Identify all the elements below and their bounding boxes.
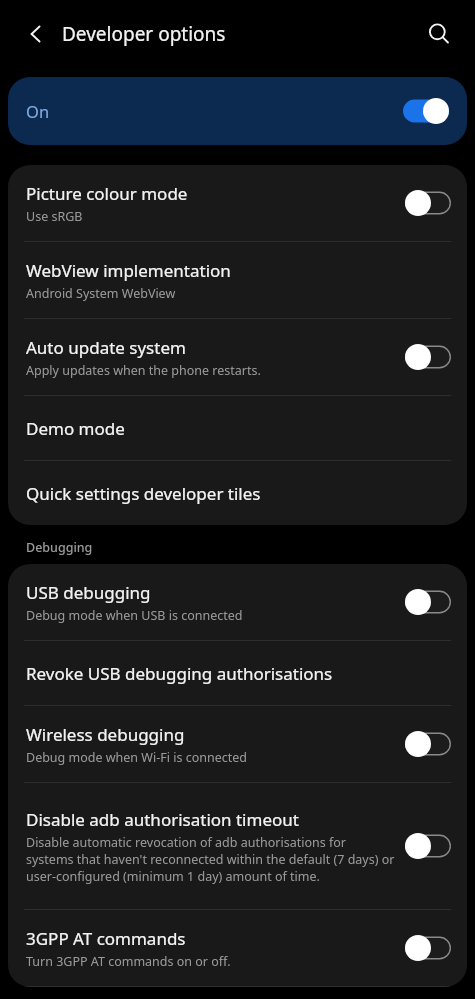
button[interactable]: Disable adb authorisation timeout [8,783,467,909]
button[interactable]: Toggle off [405,833,451,859]
staticText: Debug mode when Wi-Fi is connected [26,749,247,766]
button[interactable]: Auto update system [8,319,467,395]
staticText: On [26,100,50,122]
staticText: WebView implementation [26,259,231,282]
staticText: Android System WebView [26,285,176,302]
staticText: Revoke USB debugging authorisations [26,662,333,685]
button[interactable]: USB debugging [8,564,467,640]
button[interactable]: Quick settings developer tiles [8,461,467,525]
button[interactable]: Search [417,12,461,56]
staticText: Turn 3GPP AT commands on or off. [26,953,231,970]
staticText: Developer options [62,21,226,47]
button[interactable]: On [8,77,467,145]
staticText: 3GPP AT commands [26,927,186,950]
staticText: Quick settings developer tiles [26,482,261,505]
button[interactable]: Toggle off [405,190,451,216]
button[interactable]: Toggle off [405,935,451,961]
button[interactable]: Revoke USB debugging authorisations [8,641,467,705]
staticText: Disable automatic revocation of adb auth… [26,834,395,885]
button[interactable]: Toggle off [405,731,451,757]
button[interactable]: Demo mode [8,396,467,460]
button[interactable]: Toggle on [403,98,449,124]
button[interactable]: Back [14,12,58,56]
staticText: Disable adb authorisation timeout [26,808,299,831]
staticText: Debug mode when USB is connected [26,607,243,624]
staticText: Apply updates when the phone restarts. [26,362,261,379]
button[interactable]: Wireless debugging [8,706,467,782]
staticText: Debugging [26,539,93,556]
staticText: Auto update system [26,336,186,359]
staticText: USB debugging [26,581,151,604]
staticText: Wireless debugging [26,723,185,746]
button[interactable]: WebView implementation [8,242,467,318]
staticText: Use sRGB [26,208,83,225]
staticText: Demo mode [26,417,125,440]
button[interactable]: 3GPP AT commands [8,910,467,986]
button[interactable]: Toggle off [405,344,451,370]
staticText: Picture colour mode [26,182,188,205]
button[interactable]: Toggle off [405,589,451,615]
button[interactable]: Picture colour mode [8,165,467,241]
